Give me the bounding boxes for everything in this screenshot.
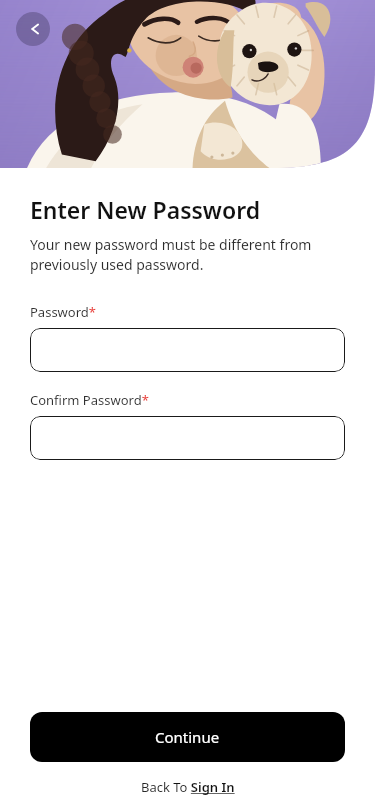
staticText: Confirm Password*	[30, 391, 149, 409]
button[interactable]	[30, 328, 345, 372]
staticText: Your new password must be different from…	[30, 235, 345, 274]
button[interactable]: Back To Sign In	[137, 776, 239, 798]
staticText: Password*	[30, 303, 96, 321]
button[interactable]: Continue	[30, 712, 345, 762]
staticText: Continue	[155, 727, 220, 747]
staticText: Enter New Password	[30, 194, 261, 225]
button[interactable]: Back	[16, 12, 50, 46]
staticText: Back To Sign In	[141, 778, 235, 796]
button[interactable]	[30, 416, 345, 460]
